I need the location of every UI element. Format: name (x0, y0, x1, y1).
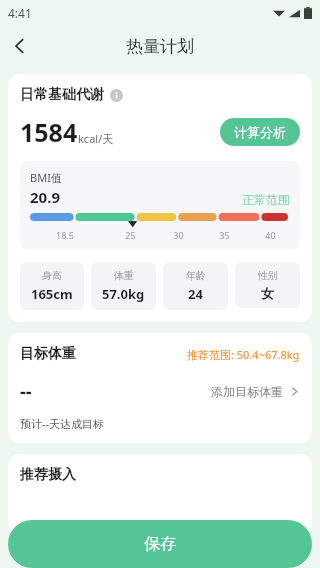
staticText: 身高 (42, 269, 62, 282)
staticText: 25 (125, 229, 136, 241)
staticText: 体重 (114, 269, 134, 282)
staticText: 年龄 (186, 269, 206, 282)
staticText: kcal/天 (78, 131, 114, 146)
button[interactable]: 计算分析 (220, 118, 300, 146)
staticText: 4:41 (8, 5, 32, 21)
button[interactable]: 体重 (91, 262, 156, 310)
staticText: 35 (219, 229, 230, 241)
button[interactable]: 身高 (20, 262, 84, 310)
staticText: BMI值 (30, 170, 62, 185)
staticText: 保存 (144, 534, 176, 554)
staticText: 性别 (258, 269, 278, 282)
button[interactable]: Back (0, 26, 40, 66)
staticText: 预计--天达成目标 (20, 416, 105, 431)
staticText: 165cm (31, 285, 73, 303)
staticText: -- (20, 379, 32, 404)
staticText: 日常基础代谢 (20, 86, 104, 104)
staticText: 正常范围 (242, 192, 290, 207)
staticText: 24 (188, 285, 203, 303)
staticText: 推荐摄入 (20, 466, 76, 484)
staticText: 18.5 (56, 229, 74, 241)
staticText: 1584 (20, 115, 78, 149)
staticText: 计算分析 (234, 124, 286, 140)
button[interactable]: Info (110, 89, 123, 102)
staticText: 女 (261, 285, 274, 301)
staticText: 推荐范围: 50.4~67.8kg (187, 347, 300, 362)
staticText: 40 (265, 229, 276, 241)
staticText: 30 (173, 229, 184, 241)
staticText: 目标体重 (20, 345, 76, 363)
button[interactable]: -- (20, 379, 300, 404)
staticText: 20.9 (30, 187, 60, 207)
button[interactable]: 保存 (8, 520, 312, 568)
button[interactable]: 性别 (235, 262, 300, 308)
staticText: 热量计划 (126, 36, 194, 57)
staticText: 57.0kg (102, 285, 145, 303)
staticText: 添加目标体重 (211, 384, 283, 399)
button[interactable]: 年龄 (163, 262, 228, 310)
